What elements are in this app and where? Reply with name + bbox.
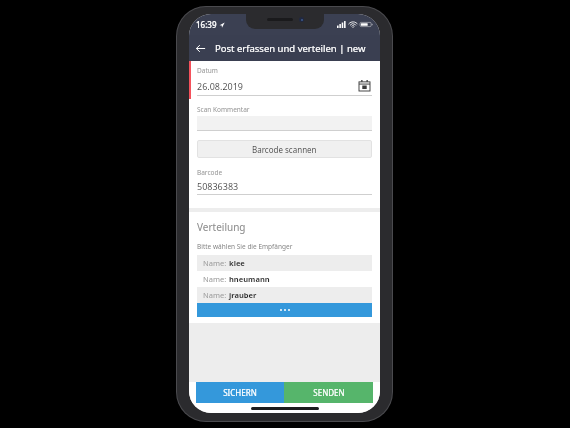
button[interactable]: SICHERN	[196, 382, 284, 403]
staticText: 50836383	[197, 180, 239, 192]
staticText: 16:39	[196, 19, 217, 30]
button[interactable]: Back	[189, 37, 211, 59]
button[interactable]: Name:	[197, 271, 372, 287]
button[interactable]: SENDEN	[284, 382, 373, 403]
staticText: SICHERN	[223, 387, 257, 398]
staticText: Name:	[203, 258, 229, 268]
staticText: klee	[229, 258, 245, 268]
button[interactable]: Name:	[197, 287, 372, 303]
staticText: Barcode scannen	[252, 144, 317, 155]
staticText: Name:	[203, 274, 229, 284]
button[interactable]: Name:	[197, 255, 372, 271]
button[interactable]: More recipients	[197, 303, 372, 317]
button[interactable]: Pick date	[357, 78, 372, 93]
staticText: Datum	[197, 66, 218, 75]
staticText: hneumann	[229, 274, 270, 284]
staticText: Verteilung	[197, 220, 246, 234]
staticText: Post erfassen und verteilen | new	[215, 42, 366, 55]
staticText: Barcode	[197, 168, 223, 177]
button[interactable]: Barcode scannen	[197, 140, 372, 158]
staticText: SENDEN	[313, 387, 345, 398]
staticText: 26.08.2019	[197, 80, 357, 92]
staticText: Bitte wählen Sie die Empfänger	[197, 242, 293, 251]
staticText: Scan Kommentar	[197, 105, 250, 114]
staticText: jrauber	[229, 290, 257, 300]
staticText: Name:	[203, 290, 229, 300]
